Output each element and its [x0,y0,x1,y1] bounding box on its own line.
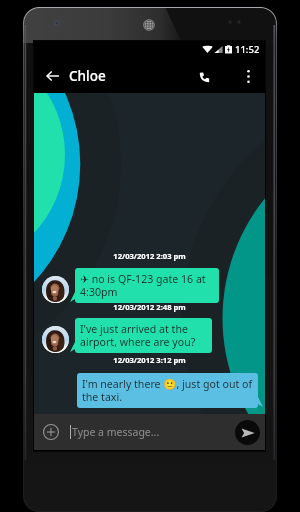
staticText: 12/03/2012 2:48 pm [113,302,186,312]
staticText: Type a message... [72,425,160,439]
staticText: ✈ no is QF-123 gate 16 at 4:30pm [80,272,214,299]
button[interactable]: Send [235,420,260,445]
staticText: 11:52 [235,43,260,56]
button[interactable]: ✈ no is QF-123 gate 16 at 4:30pm [80,272,214,299]
staticText: I've just arrived at the airport, where … [80,322,207,349]
button[interactable]: Back [38,62,66,90]
button[interactable]: I've just arrived at the airport, where … [80,322,207,349]
button[interactable]: Call [191,62,219,90]
staticText: Chloe [69,67,106,85]
staticText: 12/03/2012 3:12 pm [113,355,186,365]
button[interactable]: I'm nearly there 🙂, just got out of the … [82,377,253,404]
button[interactable]: Add attachment [36,417,66,447]
button[interactable]: More options [236,64,260,88]
staticText: 12/03/2012 2:03 pm [113,251,186,261]
staticText: I'm nearly there 🙂, just got out of the … [82,377,253,404]
